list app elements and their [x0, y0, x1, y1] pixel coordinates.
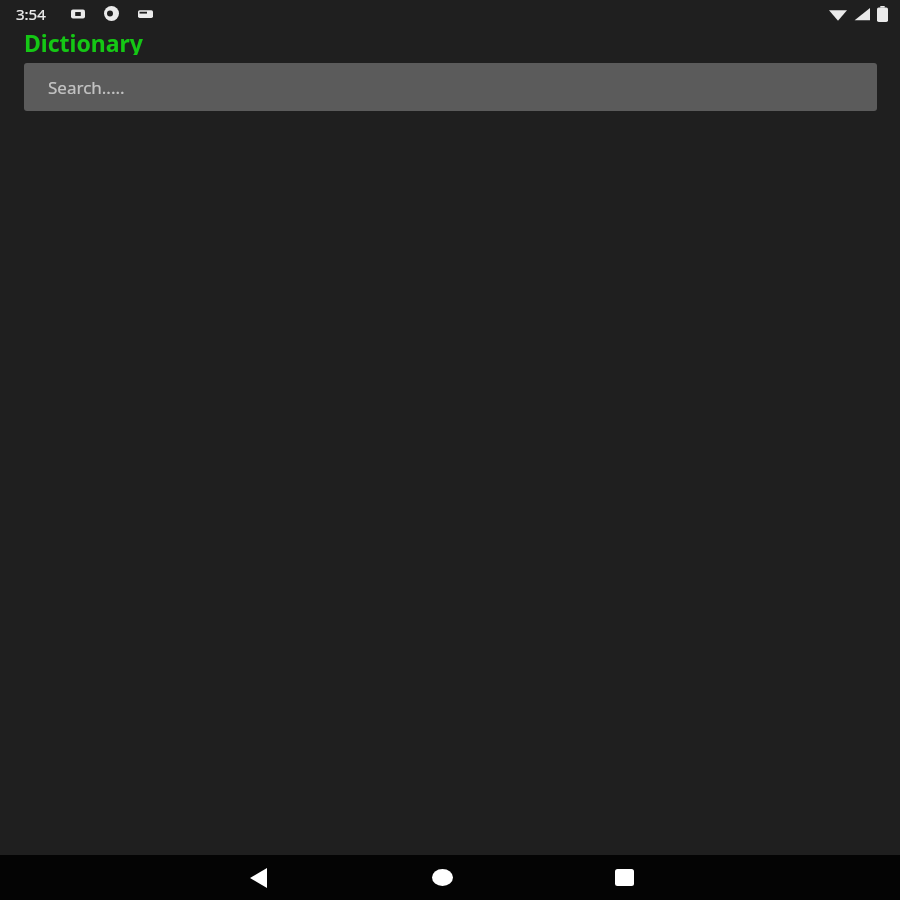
staticText: Search..... [48, 76, 125, 99]
staticText: 3:54 [16, 4, 46, 24]
button[interactable]: Recent apps [574, 855, 674, 900]
staticText: Dictionary [24, 27, 143, 55]
button[interactable]: Search..... [24, 63, 877, 111]
button[interactable]: Home [392, 855, 492, 900]
button[interactable]: Back [208, 855, 308, 900]
